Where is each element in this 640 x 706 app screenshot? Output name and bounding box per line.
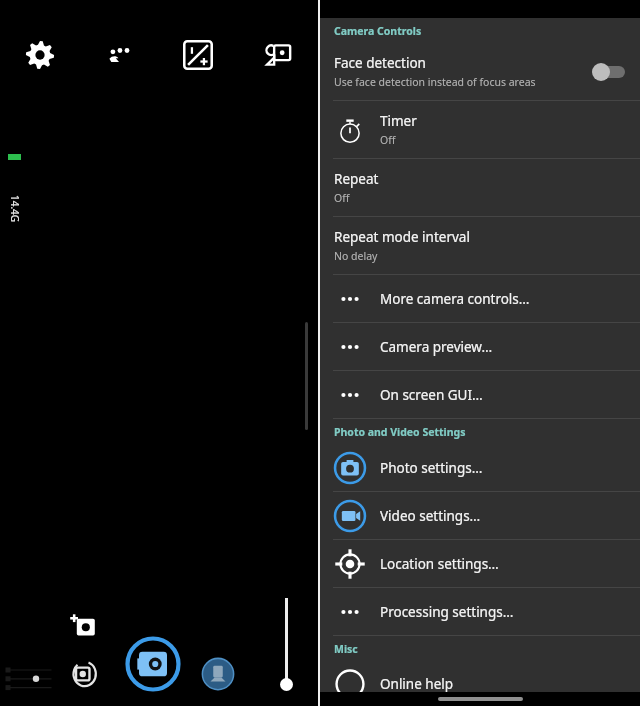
staticText: Processing settings… bbox=[380, 603, 514, 621]
button[interactable]: Switch camera bbox=[66, 655, 104, 693]
button[interactable]: Processing settings… bbox=[320, 588, 640, 635]
staticText: Camera Controls bbox=[334, 24, 422, 38]
button[interactable]: Online help bbox=[320, 661, 640, 706]
staticText: Photo settings… bbox=[380, 459, 483, 477]
staticText: Timer bbox=[380, 112, 417, 130]
staticText: Use face detection instead of focus area… bbox=[334, 75, 536, 89]
button[interactable]: Flash mode bbox=[79, 29, 158, 81]
button[interactable]: Location settings… bbox=[320, 540, 640, 587]
button[interactable]: Video settings… bbox=[320, 492, 640, 539]
button[interactable]: Gallery bbox=[199, 655, 237, 693]
button[interactable]: Camera preview… bbox=[320, 323, 640, 370]
button[interactable]: Repeat mode interval bbox=[320, 217, 640, 274]
button[interactable]: On screen GUI… bbox=[320, 371, 640, 418]
button[interactable]: Add photo bbox=[66, 608, 102, 644]
staticText: Camera preview… bbox=[380, 338, 493, 356]
button[interactable]: Scene mode bbox=[238, 29, 318, 81]
staticText: Online help bbox=[380, 675, 454, 693]
button[interactable]: More camera controls… bbox=[320, 275, 640, 322]
staticText: Photo and Video Settings bbox=[334, 425, 466, 439]
staticText: No delay bbox=[334, 249, 378, 263]
button[interactable]: Timer bbox=[320, 101, 640, 158]
button[interactable]: Photo settings… bbox=[320, 444, 640, 491]
staticText: Misc bbox=[334, 642, 358, 656]
staticText: Off bbox=[334, 191, 350, 205]
staticText: More camera controls… bbox=[380, 290, 530, 308]
staticText: Video settings… bbox=[380, 507, 481, 525]
staticText: Repeat mode interval bbox=[334, 228, 470, 246]
staticText: Repeat bbox=[334, 170, 379, 188]
staticText: Location settings… bbox=[380, 555, 499, 573]
staticText: Off bbox=[380, 133, 396, 147]
button[interactable]: Repeat bbox=[320, 159, 640, 216]
staticText: On screen GUI… bbox=[380, 386, 483, 404]
button[interactable]: Exposure bbox=[158, 29, 238, 81]
button[interactable]: Shutter bbox=[124, 635, 182, 693]
staticText: Face detection bbox=[334, 54, 426, 72]
staticText: 14.4GB 0:24:50 ID:0 bbox=[8, 195, 22, 225]
button[interactable]: Zoom bbox=[278, 598, 296, 696]
button[interactable]: Settings bbox=[0, 29, 79, 81]
button[interactable]: Face detection bbox=[320, 43, 640, 100]
